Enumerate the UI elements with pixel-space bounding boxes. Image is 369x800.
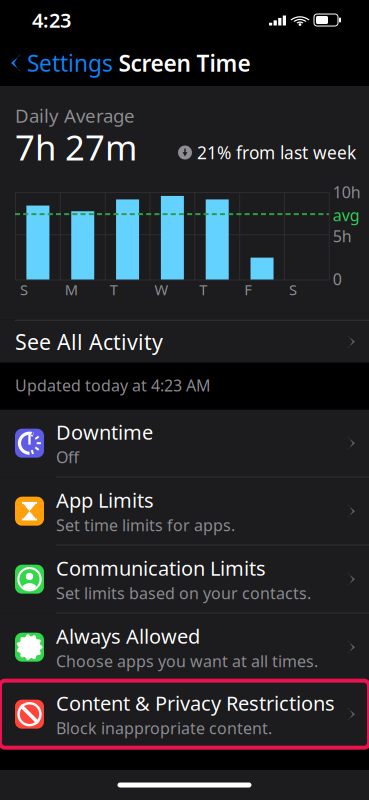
staticText: Set time limits for apps. xyxy=(56,514,235,536)
staticText: F xyxy=(244,280,252,299)
button[interactable]: App Limits xyxy=(0,478,369,546)
staticText: Always Allowed xyxy=(56,623,200,649)
button[interactable]: Downtime xyxy=(0,410,369,478)
staticText: W xyxy=(154,280,168,299)
staticText: S xyxy=(289,280,297,299)
button[interactable]: Always Allowed xyxy=(0,614,369,681)
staticText: App Limits xyxy=(56,487,154,513)
staticText: Choose apps you want at all times. xyxy=(56,650,318,672)
staticText: Settings xyxy=(27,48,113,78)
staticText: Off xyxy=(56,446,79,468)
staticText: 10h xyxy=(333,181,361,203)
button[interactable]: See All Activity xyxy=(0,320,369,363)
staticText: Screen Time xyxy=(118,48,250,78)
staticText: Content & Privacy Restrictions xyxy=(56,690,335,716)
staticText: avg xyxy=(333,204,360,226)
staticText: Block inappropriate content. xyxy=(56,717,272,739)
staticText: Communication Limits xyxy=(56,555,266,581)
staticText: 21% from last week xyxy=(197,141,356,164)
staticText: 0 xyxy=(333,268,342,290)
staticText: S xyxy=(20,280,28,299)
button[interactable]: Communication Limits xyxy=(0,546,369,614)
staticText: Updated today at 4:23 AM xyxy=(15,375,211,396)
staticText: T xyxy=(110,280,118,299)
staticText: Downtime xyxy=(56,419,153,445)
staticText: Set limits based on your contacts. xyxy=(56,582,311,604)
button[interactable]: Content & Privacy Restrictions xyxy=(0,681,369,748)
staticText: 7h 27m xyxy=(15,124,137,170)
staticText: M xyxy=(65,280,78,299)
staticText: 4:23 xyxy=(32,7,71,33)
button[interactable]: Settings xyxy=(0,40,121,86)
staticText: See All Activity xyxy=(15,327,163,356)
staticText: Daily Average xyxy=(15,103,135,128)
staticText: 5h xyxy=(333,225,352,247)
staticText: T xyxy=(199,280,207,299)
